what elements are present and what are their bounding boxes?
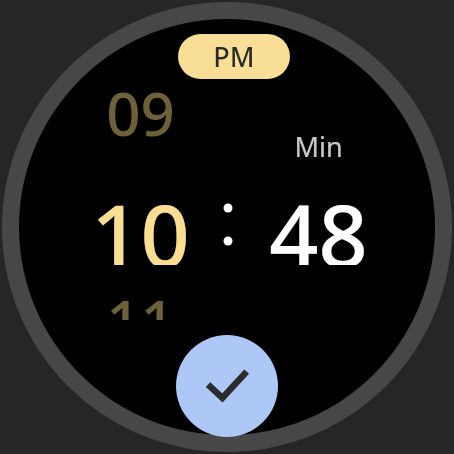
staticText: 10 — [91, 175, 190, 265]
staticText: 11 — [106, 280, 175, 320]
staticText: 09 — [106, 72, 175, 150]
button[interactable]: PM — [178, 34, 290, 79]
button[interactable]: Min — [253, 128, 383, 268]
staticText: PM — [213, 38, 255, 75]
staticText: Min — [294, 128, 343, 164]
button[interactable]: 09 — [75, 95, 205, 320]
button[interactable]: Confirm time — [176, 335, 278, 437]
staticText: 48 — [269, 175, 368, 265]
